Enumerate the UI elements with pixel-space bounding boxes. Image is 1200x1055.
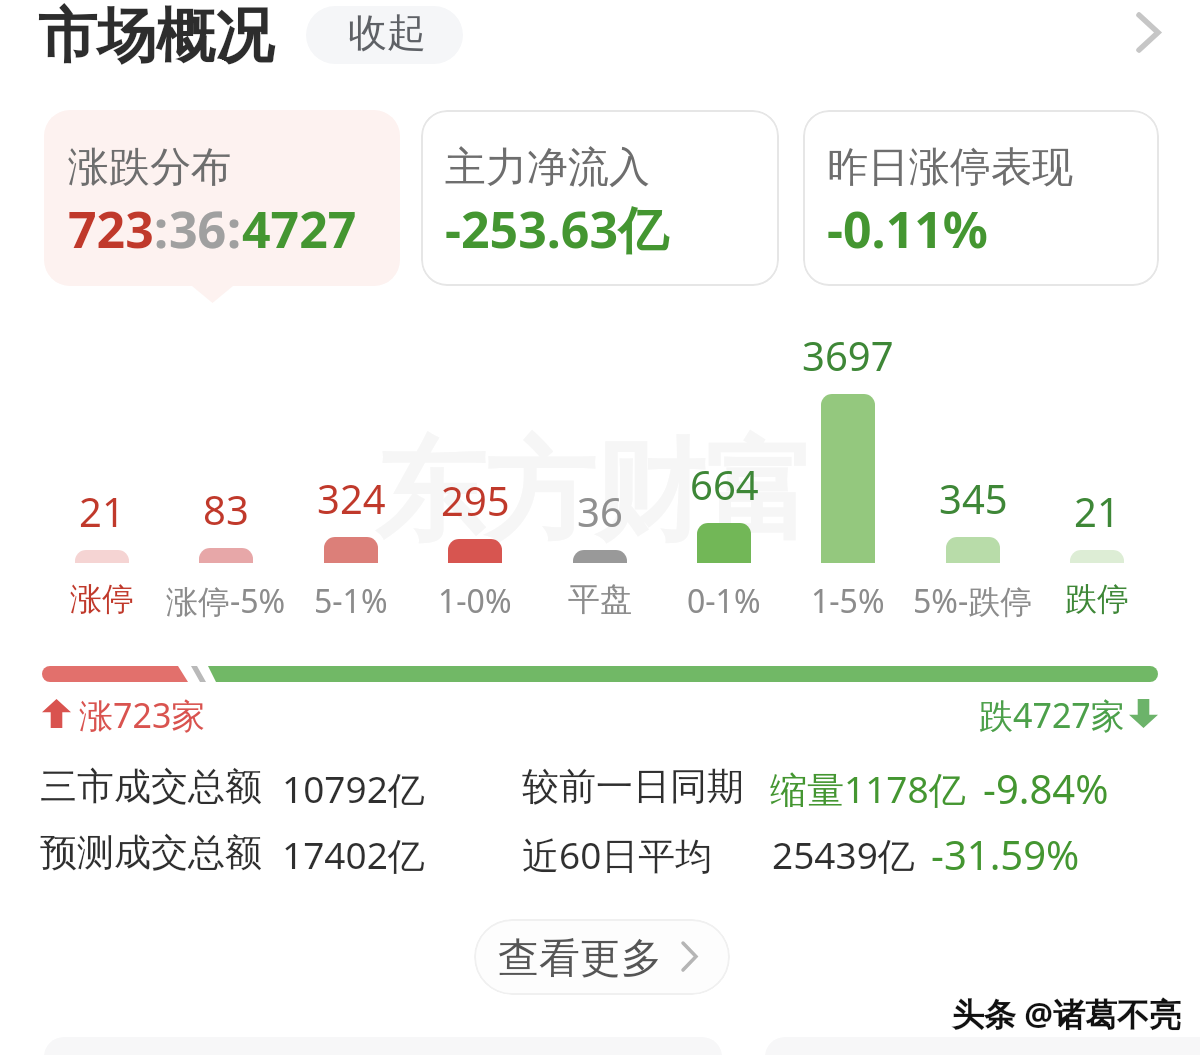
staticText: 头条 @诸葛不亮 <box>952 992 1182 1036</box>
staticText: 36 <box>577 484 623 538</box>
staticText: -253.63亿 <box>445 195 669 263</box>
staticText: 17402亿 <box>282 829 425 880</box>
staticText: -9.84% <box>983 761 1109 815</box>
staticText: 近60日平均 <box>522 829 713 880</box>
button[interactable]: 查看更多 <box>474 919 730 995</box>
staticText: -0.11% <box>827 195 988 263</box>
staticText: 主力净流入 <box>445 142 650 194</box>
staticText: 跌停 <box>1065 579 1129 619</box>
staticText: 涨停-5% <box>166 579 286 623</box>
staticText: 三市成交总额 <box>40 763 262 810</box>
staticText: 4727 <box>242 195 357 263</box>
staticText: 723 <box>68 195 154 263</box>
staticText: -31.59% <box>931 827 1080 881</box>
button[interactable]: 昨日涨停表现 <box>803 110 1159 286</box>
staticText: 平盘 <box>568 579 632 619</box>
staticText: 36 <box>169 195 227 263</box>
button[interactable]: Expand market overview <box>1108 0 1172 64</box>
staticText: 东方财富 <box>375 423 815 562</box>
button[interactable]: 涨跌分布 <box>44 110 400 286</box>
staticText: 1-0% <box>438 579 512 623</box>
staticText: 收起 <box>348 8 426 57</box>
staticText: 缩量1178亿 <box>770 763 966 814</box>
staticText: 昨日涨停表现 <box>827 142 1073 194</box>
staticText: 21 <box>79 484 125 538</box>
staticText: 345 <box>939 471 1008 525</box>
staticText: 324 <box>317 471 386 525</box>
staticText: 涨跌分布 <box>68 142 232 194</box>
staticText: 0-1% <box>687 579 761 623</box>
button[interactable]: 市场概况 <box>38 0 274 73</box>
staticText: 25439亿 <box>772 829 915 880</box>
staticText: 83 <box>203 482 249 536</box>
staticText: 3697 <box>802 328 894 382</box>
staticText: 5%-跌停 <box>913 579 1033 623</box>
staticText: 较前一日同期 <box>522 763 744 810</box>
staticText: 664 <box>690 457 759 511</box>
staticText: 5-1% <box>314 579 388 623</box>
staticText: 295 <box>441 473 510 527</box>
button[interactable]: 主力净流入 <box>421 110 779 286</box>
staticText: : <box>154 195 169 263</box>
staticText: 10792亿 <box>282 763 425 814</box>
staticText: : <box>227 195 242 263</box>
staticText: 涨停 <box>70 579 134 619</box>
staticText: 查看更多 <box>498 933 662 985</box>
staticText: 1-5% <box>811 579 885 623</box>
staticText: 涨723家 <box>79 692 206 738</box>
staticText: 预测成交总额 <box>40 829 262 876</box>
staticText: 跌4727家 <box>979 692 1125 738</box>
staticText: 21 <box>1074 484 1120 538</box>
button[interactable]: 收起 <box>306 6 463 64</box>
